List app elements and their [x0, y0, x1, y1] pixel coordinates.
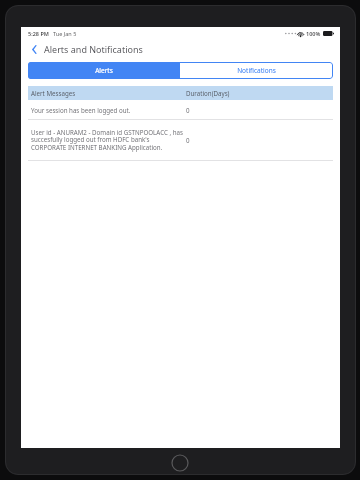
staticText: Tue Jan 5 [53, 30, 77, 37]
button[interactable]: Your session has been logged out. [28, 100, 333, 120]
button[interactable]: Notifications [180, 62, 333, 79]
staticText: 100% [306, 30, 321, 37]
staticText: Your session has been logged out. [31, 106, 131, 114]
staticText: 0 [186, 106, 190, 114]
staticText: 5:28 PM [28, 30, 49, 37]
staticText: Alert Messages [31, 89, 76, 97]
staticText: Notifications [237, 66, 276, 75]
staticText: 0 [186, 136, 190, 144]
staticText: Alerts and Notifications [44, 43, 143, 55]
staticText: Duration(Days) [186, 89, 230, 97]
staticText: User id - ANURAM2 - Domain id GSTNPOOLAC… [31, 128, 183, 152]
button[interactable]: Alerts [28, 62, 180, 79]
button[interactable]: Home [171, 454, 189, 472]
staticText: Alerts [95, 66, 113, 75]
button[interactable]: Back [28, 41, 41, 57]
button[interactable]: User id - ANURAM2 - Domain id GSTNPOOLAC… [28, 120, 333, 161]
